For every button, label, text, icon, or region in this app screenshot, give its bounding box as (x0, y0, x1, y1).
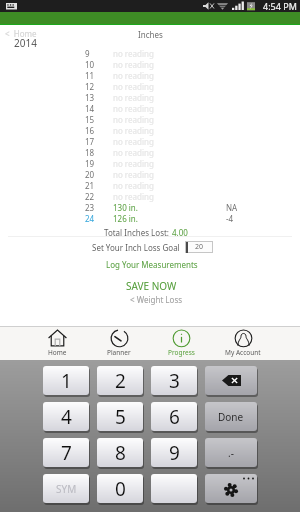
staticText: no reading (113, 70, 226, 81)
staticText: Inches (138, 29, 163, 40)
staticText: no reading (113, 114, 226, 125)
button[interactable]: 20 (0, 169, 300, 180)
staticText: < Weight Loss (130, 294, 183, 305)
staticText: no reading (113, 59, 226, 70)
button[interactable]: < Home (3, 28, 39, 39)
staticText: 22 (85, 191, 113, 202)
button[interactable]: < Weight Loss (130, 294, 183, 305)
staticText: 8 (115, 440, 126, 466)
button[interactable]: 10 (0, 59, 300, 70)
staticText: no reading (113, 125, 226, 136)
button[interactable]: 17 (0, 136, 300, 147)
staticText: 130 in. (113, 202, 226, 213)
staticText: 11 (85, 70, 113, 81)
staticText: Set Your Inch Loss Goal (92, 242, 180, 253)
staticText: 12 (85, 81, 113, 92)
staticText: no reading (113, 103, 226, 114)
staticText: 6 (169, 404, 180, 430)
button[interactable]: Settings (205, 474, 257, 503)
button[interactable] (151, 474, 197, 503)
button[interactable]: 7 (43, 438, 89, 467)
staticText: 16 (85, 125, 113, 136)
button[interactable]: 22 (0, 191, 300, 202)
staticText: Planner (107, 348, 131, 357)
button[interactable]: 21 (0, 180, 300, 191)
button[interactable]: 3 (151, 366, 197, 395)
staticText: no reading (113, 147, 226, 158)
staticText: 5 (115, 404, 126, 430)
staticText: 4 (61, 404, 72, 430)
staticText: < Home (5, 28, 37, 39)
staticText: no reading (113, 191, 226, 202)
staticText: no reading (113, 48, 226, 59)
button[interactable]: 9 (151, 438, 197, 467)
staticText: 24 (85, 213, 113, 224)
button[interactable]: 1 (43, 366, 89, 395)
staticText: 20 (195, 242, 204, 252)
staticText: Home (48, 348, 67, 357)
button[interactable]: 6 (151, 402, 197, 431)
button[interactable]: 14 (0, 103, 300, 114)
staticText: 15 (85, 114, 113, 125)
staticText: 19 (85, 158, 113, 169)
staticText: Total Inches Lost: (104, 227, 172, 238)
staticText: 9 (169, 440, 180, 466)
staticText: 21 (85, 180, 113, 191)
button[interactable]: .- (205, 438, 257, 467)
button[interactable]: Log Your Measurements (106, 259, 198, 270)
button[interactable]: 0 (97, 474, 143, 503)
staticText: 2 (115, 368, 126, 394)
staticText: 126 in. (113, 213, 226, 224)
button[interactable]: 11 (0, 70, 300, 81)
button[interactable]: 18 (0, 147, 300, 158)
button[interactable]: 5 (97, 402, 143, 431)
button[interactable]: Done (205, 402, 257, 431)
staticText: no reading (113, 81, 226, 92)
button[interactable]: 19 (0, 158, 300, 169)
button[interactable]: 8 (97, 438, 143, 467)
staticText: 7 (61, 440, 72, 466)
staticText: 13 (85, 92, 113, 103)
staticText: 0 (115, 476, 126, 502)
staticText: 4.00 (172, 227, 188, 238)
button[interactable]: Backspace (205, 366, 257, 395)
button[interactable]: Home (26, 327, 88, 360)
staticText: no reading (113, 92, 226, 103)
button[interactable]: 13 (0, 92, 300, 103)
staticText: 18 (85, 147, 113, 158)
button[interactable]: Progress (150, 327, 212, 360)
button[interactable]: 4 (43, 402, 89, 431)
staticText: no reading (113, 158, 226, 169)
button[interactable]: Planner (88, 327, 150, 360)
button[interactable]: 20 (185, 241, 213, 253)
staticText: Done (218, 410, 244, 424)
button[interactable]: 16 (0, 125, 300, 136)
staticText: 4:54 PM (263, 0, 297, 12)
staticText: .- (228, 446, 234, 460)
staticText: no reading (113, 180, 226, 191)
button[interactable]: 23 (0, 202, 300, 213)
staticText: SAVE NOW (126, 279, 177, 293)
button[interactable]: 12 (0, 81, 300, 92)
staticText: 23 (85, 202, 113, 213)
staticText: SYM (56, 482, 77, 496)
button[interactable]: SYM (43, 474, 89, 503)
staticText: 10 (85, 59, 113, 70)
staticText: My Account (225, 348, 261, 357)
staticText: 2014 (14, 36, 37, 50)
button[interactable]: 9 (0, 48, 300, 59)
button[interactable]: 15 (0, 114, 300, 125)
staticText: NA (226, 202, 238, 213)
staticText: 17 (85, 136, 113, 147)
staticText: 1 (61, 368, 72, 394)
staticText: 3 (169, 368, 180, 394)
staticText: -4 (226, 213, 234, 224)
staticText: Log Your Measurements (106, 259, 198, 270)
button[interactable]: 2 (97, 366, 143, 395)
staticText: Progress (168, 348, 195, 357)
button[interactable]: 24 (0, 213, 300, 224)
staticText: no reading (113, 169, 226, 180)
button[interactable]: SAVE NOW (126, 279, 177, 293)
button[interactable]: My Account (212, 327, 274, 360)
staticText: no reading (113, 136, 226, 147)
